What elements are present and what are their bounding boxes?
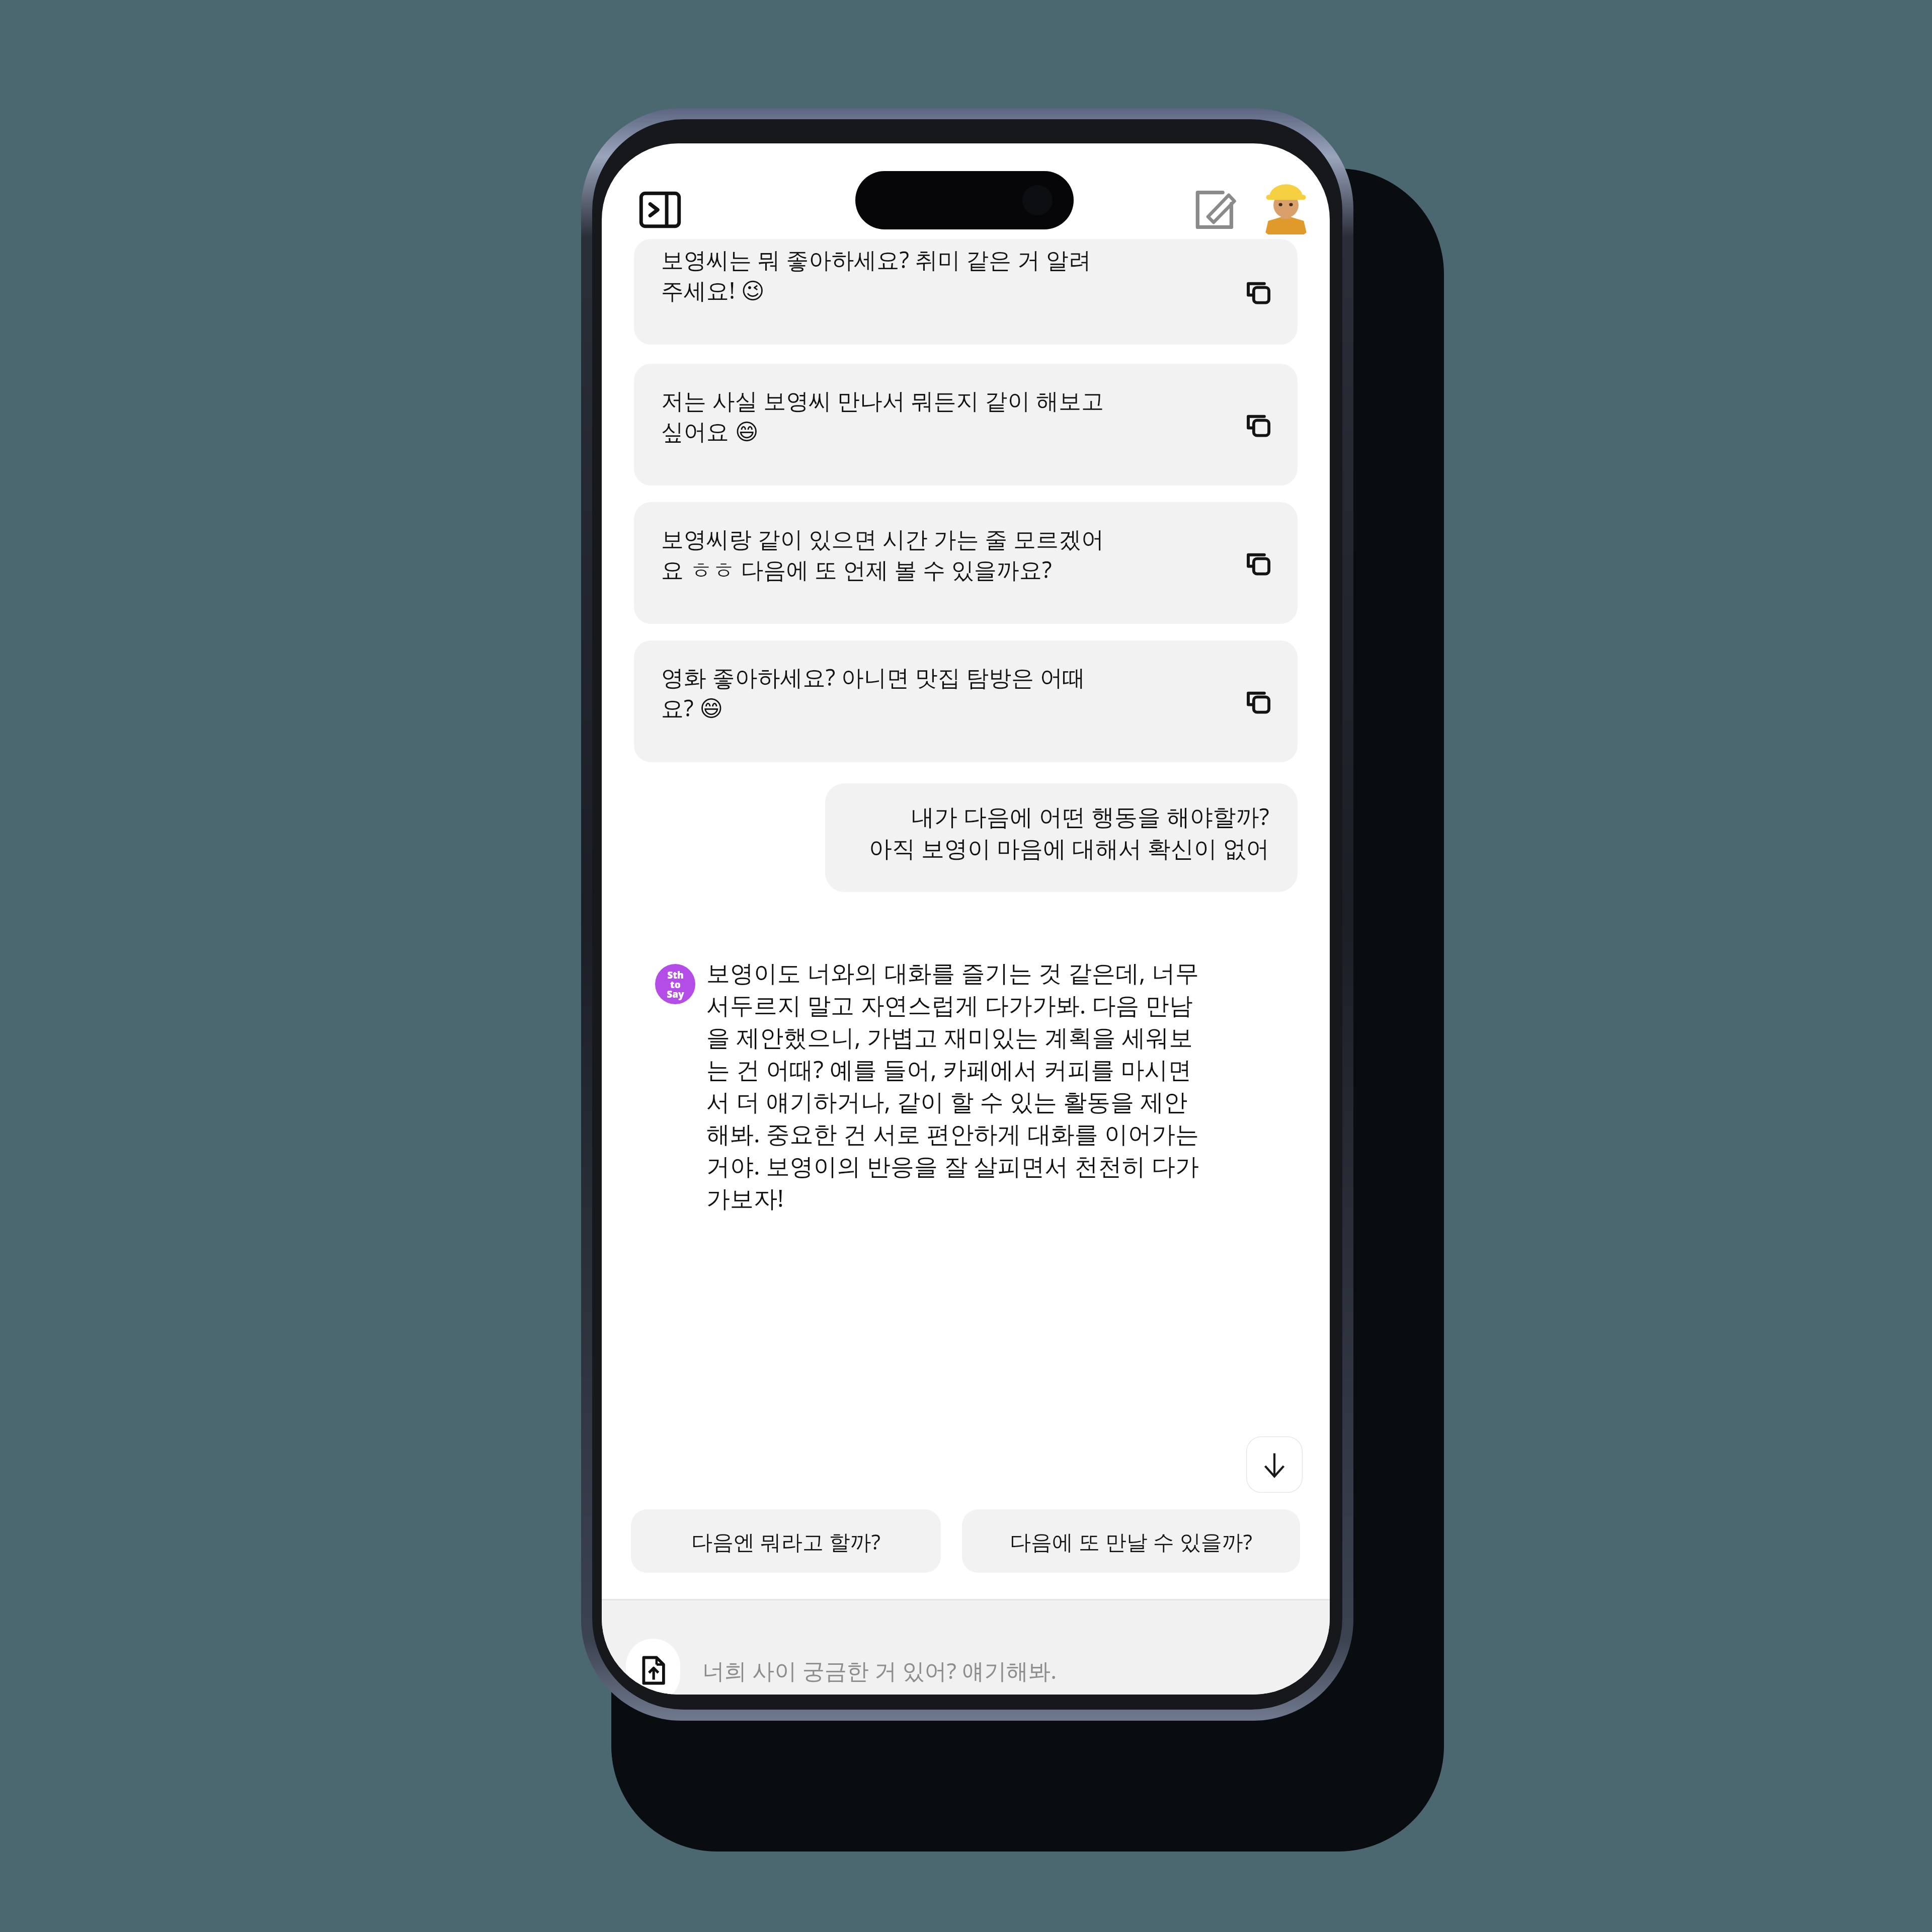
staticText: 너희 사이 궁금한 거 있어? 얘기해봐. [702, 1655, 1057, 1685]
staticText: 보영씨는 뭐 좋아하세요? 취미 같은 거 알려 [661, 244, 1091, 275]
staticText: 다음엔 뭐라고 할까? [691, 1527, 881, 1556]
staticText: 가보자! [706, 1182, 784, 1214]
staticText: 저는 사실 보영씨 만나서 뭐든지 같이 해보고 [661, 385, 1104, 416]
staticText: 보영이도 너와의 대화를 즐기는 것 같은데, 너무 [706, 956, 1199, 989]
staticText: 싶어요 😄 [661, 416, 759, 446]
button[interactable]: 보영씨랑 같이 있으면 시간 가는 줄 모르겠어 [634, 502, 1298, 624]
button[interactable]: Copy [1233, 267, 1283, 317]
button[interactable]: 저는 사실 보영씨 만나서 뭐든지 같이 해보고 [634, 364, 1298, 486]
staticText: Sth to Say [667, 969, 684, 1000]
button[interactable]: 영화 좋아하세요? 아니면 맛집 탐방은 어때 [634, 640, 1298, 762]
staticText: 해봐. 중요한 건 서로 편안하게 대화를 이어가는 [706, 1117, 1199, 1150]
staticText: 는 건 어때? 예를 들어, 카페에서 커피를 마시면 [706, 1053, 1192, 1085]
staticText: 서 더 얘기하거나, 같이 할 수 있는 활동을 제안 [706, 1085, 1188, 1117]
staticText: 내가 다음에 어떤 행동을 해야할까? [911, 800, 1269, 832]
staticText: 다음에 또 만날 수 있을까? [1010, 1527, 1252, 1556]
staticText: 보영씨랑 같이 있으면 시간 가는 줄 모르겠어 [661, 523, 1104, 554]
button[interactable]: Copy [1233, 538, 1283, 588]
staticText: 아직 보영이 마음에 대해서 확신이 없어 [869, 832, 1269, 864]
staticText: 서두르지 말고 자연스럽게 다가가봐. 다음 만남 [706, 989, 1193, 1021]
button[interactable]: 다음엔 뭐라고 할까? [631, 1509, 941, 1573]
staticText: 요 ㅎㅎ 다음에 또 언제 볼 수 있을까요? [661, 554, 1052, 585]
button[interactable]: Copy [1233, 676, 1283, 727]
button[interactable]: 보영씨는 뭐 좋아하세요? 취미 같은 거 알려 [634, 239, 1298, 345]
button[interactable]: Copy [1233, 399, 1283, 450]
button[interactable]: 너희 사이 궁금한 거 있어? 얘기해봐. [702, 1633, 1256, 1695]
staticText: 영화 좋아하세요? 아니면 맛집 탐방은 어때 [661, 662, 1086, 692]
staticText: 요? 😄 [661, 692, 723, 723]
staticText: 을 제안했으니, 가볍고 재미있는 계획을 세워보 [706, 1021, 1193, 1053]
button[interactable]: Scroll to bottom [1246, 1436, 1303, 1493]
staticText: 주세요! 😉 [661, 275, 765, 305]
button[interactable]: 다음에 또 만날 수 있을까? [962, 1509, 1300, 1573]
staticText: 거야. 보영이의 반응을 잘 살피면서 천천히 다가 [706, 1150, 1199, 1182]
button[interactable]: Profile [1254, 177, 1318, 240]
button[interactable]: Open sidebar [625, 175, 695, 245]
button[interactable]: Attach file [626, 1639, 680, 1695]
button[interactable]: New chat [1179, 175, 1249, 245]
button[interactable]: 내가 다음에 어떤 행동을 해야할까? [825, 783, 1298, 892]
